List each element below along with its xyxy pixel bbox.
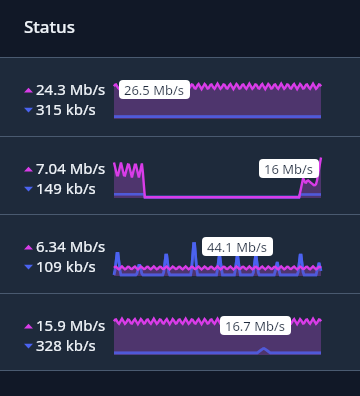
staticText: 6.34 Mb/s: [36, 236, 106, 256]
staticText: 315 kb/s: [36, 99, 96, 119]
button[interactable]: 15.9 Mb/s: [0, 293, 360, 371]
staticText: 44.1 Mb/s: [207, 238, 268, 256]
staticText: 7.04 Mb/s: [36, 158, 106, 178]
staticText: 149 kb/s: [36, 178, 96, 198]
button[interactable]: 7.04 Mb/s: [0, 136, 360, 214]
staticText: 16 Mb/s: [264, 160, 314, 178]
button[interactable]: 6.34 Mb/s: [0, 214, 360, 293]
staticText: 26.5 Mb/s: [124, 81, 185, 99]
staticText: 109 kb/s: [36, 256, 96, 276]
staticText: 24.3 Mb/s: [36, 79, 106, 99]
staticText: 328 kb/s: [36, 335, 96, 355]
button[interactable]: 24.3 Mb/s: [0, 57, 360, 136]
staticText: 15.9 Mb/s: [36, 315, 106, 335]
staticText: Status: [24, 15, 76, 38]
staticText: 16.7 Mb/s: [225, 317, 286, 335]
